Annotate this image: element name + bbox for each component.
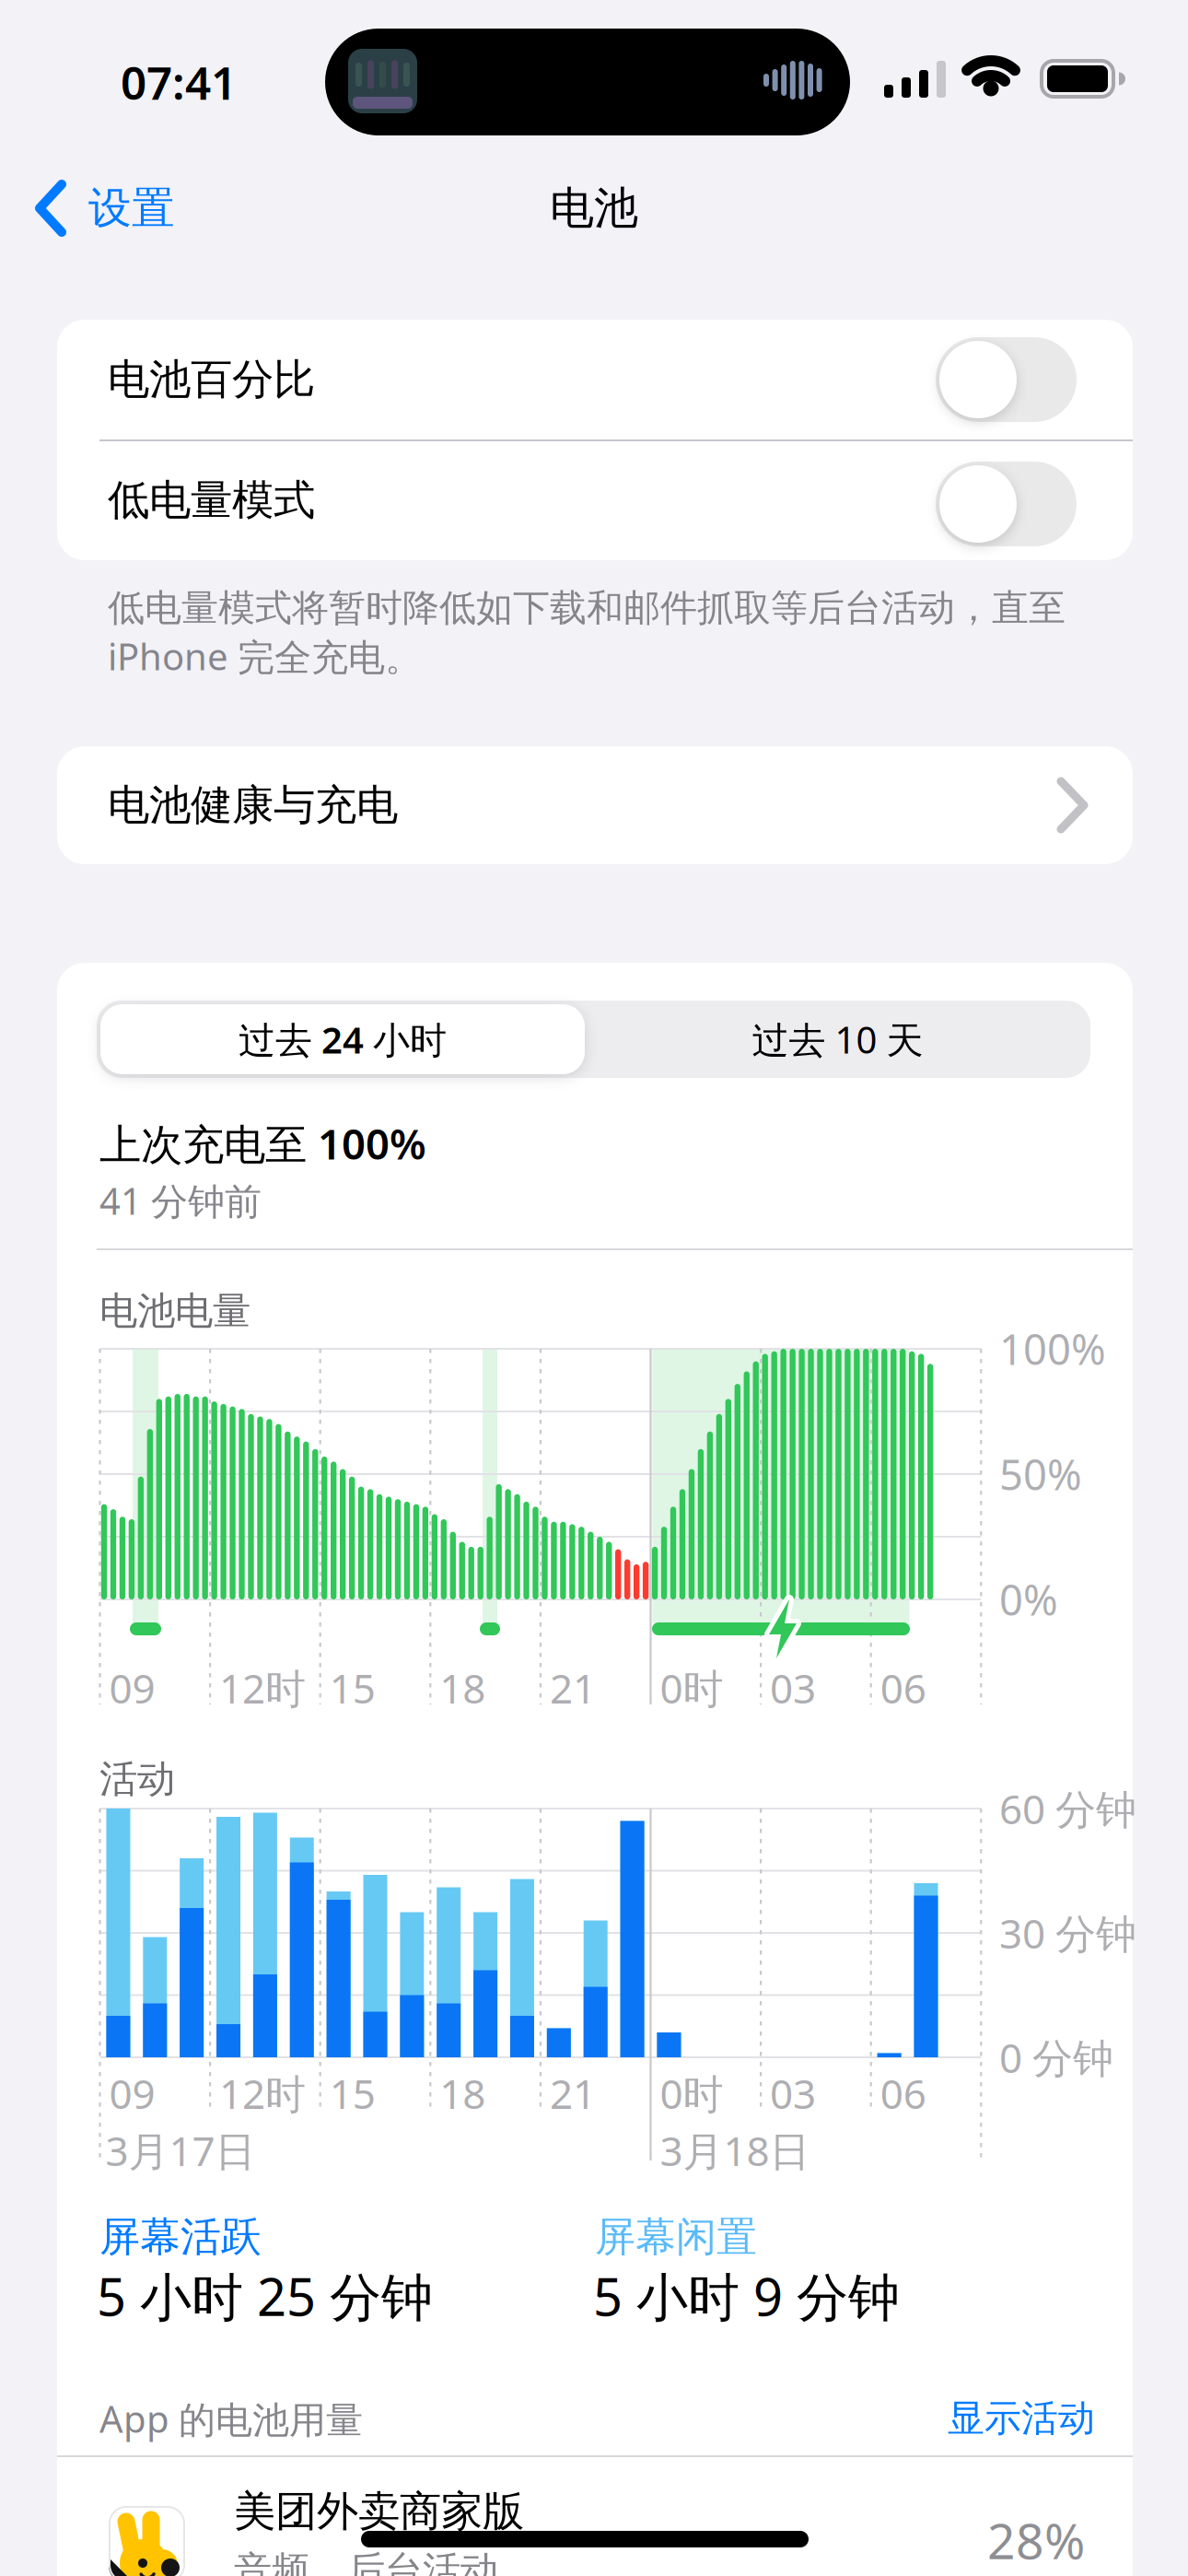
staticText: 18: [440, 1661, 486, 1715]
staticText: 18: [440, 2066, 486, 2120]
button[interactable]: 返回设置: [35, 179, 247, 238]
button[interactable]: 低电量模式: [57, 439, 1133, 560]
staticText: 60 分钟: [999, 1782, 1136, 1835]
staticText: 15: [329, 2066, 375, 2120]
staticText: 过去 10 天: [752, 1015, 923, 1064]
staticText: 28%: [987, 2507, 1085, 2573]
staticText: 09: [109, 1661, 155, 1715]
staticText: 15: [329, 1661, 375, 1715]
staticText: 3月17日: [105, 2123, 256, 2177]
staticText: 06: [880, 1661, 926, 1715]
staticText: 0时: [660, 2066, 723, 2120]
staticText: 100%: [999, 1321, 1106, 1377]
button[interactable]: 电池百分比: [57, 320, 1133, 439]
staticText: 03: [770, 2066, 816, 2120]
staticText: 50%: [999, 1446, 1082, 1502]
staticText: 美团外卖商家版: [234, 2486, 524, 2537]
staticText: 5 小时 25 分钟: [97, 2262, 433, 2330]
staticText: 09: [109, 2066, 155, 2120]
staticText: 低电量模式: [108, 475, 315, 526]
staticText: 电池: [550, 181, 638, 235]
staticText: 5 小时 9 分钟: [593, 2262, 900, 2330]
staticText: 03: [770, 1661, 816, 1715]
staticText: 0时: [660, 1661, 723, 1715]
staticText: 21: [550, 2066, 596, 2120]
staticText: 0%: [999, 1572, 1058, 1627]
staticText: 上次充电至 100%: [99, 1116, 426, 1171]
staticText: 12时: [219, 2066, 306, 2120]
button[interactable]: 过去 10 天: [585, 1004, 1090, 1074]
button[interactable]: 显示活动: [819, 2395, 1095, 2441]
staticText: 07:41: [121, 52, 237, 112]
staticText: 30 分钟: [999, 1906, 1136, 1960]
staticText: 3月18日: [660, 2123, 810, 2177]
staticText: 低电量模式将暂时降低如下载和邮件抓取等后台活动，直至: [108, 585, 1066, 631]
staticText: 设置: [88, 182, 175, 235]
staticText: App 的电池用量: [99, 2394, 363, 2443]
button[interactable]: 过去 24 小时: [100, 1004, 585, 1074]
staticText: 41 分钟前: [99, 1176, 262, 1225]
staticText: 显示活动: [948, 2396, 1095, 2441]
staticText: 屏幕闲置: [595, 2212, 757, 2262]
staticText: 屏幕活跃: [99, 2212, 262, 2262]
staticText: 过去 24 小时: [239, 1015, 447, 1064]
staticText: 21: [550, 1661, 596, 1715]
staticText: 12时: [219, 1661, 306, 1715]
staticText: 活动: [99, 1756, 175, 1802]
staticText: 06: [880, 2066, 926, 2120]
staticText: 电池健康与充电: [108, 780, 398, 831]
staticText: 电池百分比: [108, 354, 315, 405]
staticText: 电池电量: [99, 1288, 250, 1334]
staticText: iPhone 完全充电。: [108, 631, 422, 680]
staticText: 音频，后台活动: [234, 2547, 498, 2576]
button[interactable]: 美团外卖商家版: [57, 2469, 1133, 2576]
button[interactable]: 电池健康与充电: [57, 746, 1133, 864]
staticText: 0 分钟: [999, 2030, 1113, 2084]
